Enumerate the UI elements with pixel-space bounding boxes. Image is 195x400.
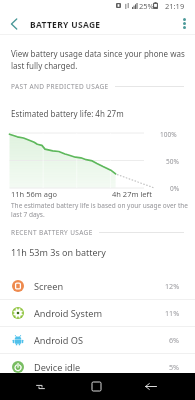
button[interactable]: Recent apps (26, 373, 54, 400)
staticText: BATTERY USAGE (30, 19, 101, 31)
staticText: 4h 27m left (112, 189, 152, 199)
staticText: 5% (169, 362, 180, 372)
staticText: PAST AND PREDICTED USAGE (11, 82, 109, 91)
staticText: Estimated battery life: 4h 27m (11, 108, 124, 119)
staticText: Android OS (34, 334, 83, 347)
staticText: 12% (165, 281, 180, 291)
staticText: 11h 53m 3s on battery (11, 246, 106, 258)
staticText: Device idle (34, 361, 81, 374)
staticText: 11h 56m ago (11, 189, 58, 199)
staticText: 25% (139, 1, 154, 11)
staticText: Screen (34, 280, 64, 293)
button[interactable]: Device idle (0, 354, 195, 380)
staticText: 50% (166, 157, 179, 166)
staticText: 100% (160, 130, 177, 139)
button[interactable]: Back (137, 373, 165, 400)
button[interactable]: Android System (0, 300, 195, 326)
staticText: The estimated battery life is based on y… (11, 201, 189, 210)
button[interactable]: Android OS (0, 327, 195, 353)
button[interactable]: Navigate up (3, 13, 25, 34)
staticText: Android System (34, 307, 102, 320)
staticText: 21:19 (165, 1, 185, 11)
staticText: last fully charged. (11, 60, 78, 71)
staticText: last 7 days. (11, 210, 45, 219)
staticText: 0% (170, 184, 180, 193)
button[interactable]: Screen (0, 273, 195, 299)
button[interactable]: More options (173, 13, 195, 34)
staticText: RECENT BATTERY USAGE (11, 228, 93, 237)
staticText: 6% (169, 335, 180, 345)
staticText: 11% (165, 308, 180, 318)
button[interactable]: Home (82, 373, 110, 400)
staticText: View battery usage data since your phone… (11, 48, 185, 59)
